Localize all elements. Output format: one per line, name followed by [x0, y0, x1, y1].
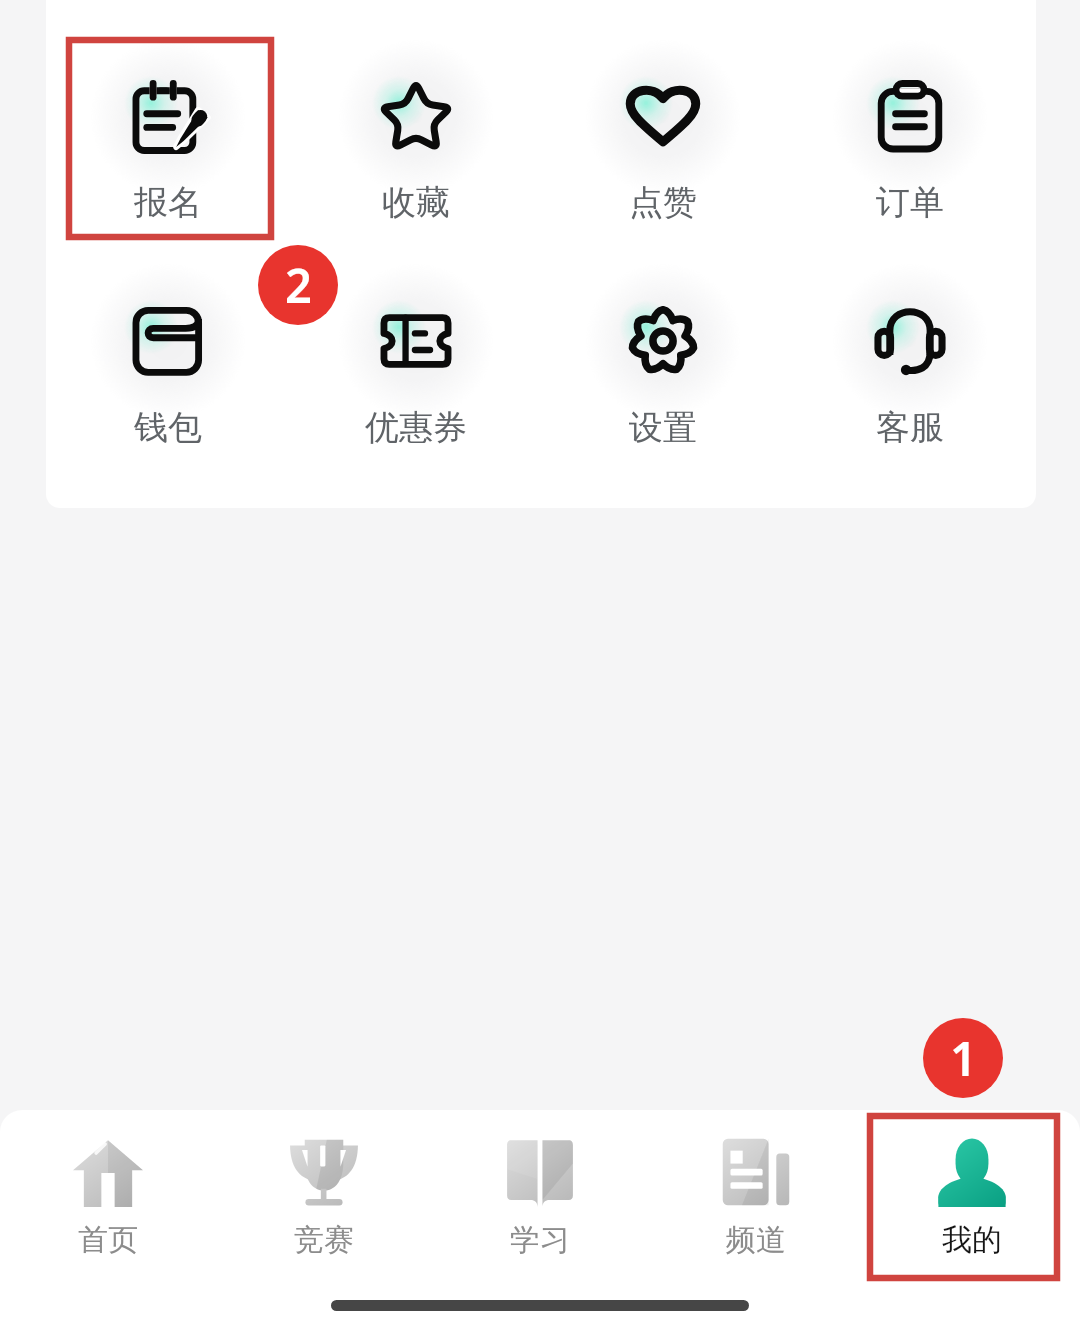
button[interactable]: 学习 [432, 1110, 648, 1259]
staticText: 客服 [790, 406, 1030, 449]
staticText: 报名 [48, 181, 288, 224]
staticText: 2 [285, 253, 312, 317]
button[interactable]: 竞赛 [216, 1110, 432, 1259]
staticText: 1 [950, 1026, 977, 1090]
staticText: 订单 [790, 181, 1030, 224]
button[interactable]: 收藏 [304, 45, 528, 232]
staticText: 学习 [510, 1221, 570, 1259]
staticText: 竞赛 [294, 1221, 354, 1259]
button[interactable]: 首页 [0, 1110, 216, 1259]
staticText: 我的 [942, 1221, 1002, 1259]
button[interactable]: 频道 [648, 1110, 864, 1259]
button[interactable]: 报名 [56, 45, 280, 232]
button[interactable]: 客服 [798, 269, 1022, 457]
staticText: 收藏 [296, 181, 536, 224]
button[interactable]: 优惠券 [304, 269, 528, 457]
staticText: 钱包 [48, 406, 288, 449]
button[interactable]: 点赞 [551, 45, 775, 232]
staticText: 设置 [543, 406, 783, 449]
button[interactable]: 钱包 [56, 269, 280, 457]
staticText: 优惠券 [296, 406, 536, 449]
button[interactable]: 订单 [798, 45, 1022, 232]
staticText: 频道 [726, 1221, 786, 1259]
button[interactable]: 设置 [551, 269, 775, 457]
staticText: 首页 [78, 1221, 138, 1259]
button[interactable]: 我的 [864, 1110, 1080, 1259]
staticText: 点赞 [543, 181, 783, 224]
